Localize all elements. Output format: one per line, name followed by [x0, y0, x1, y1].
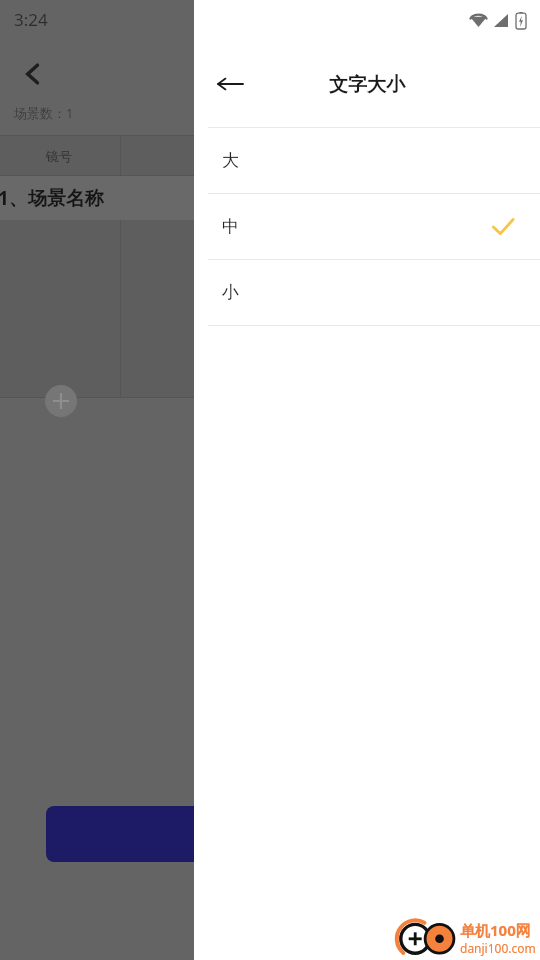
button[interactable]: 中 [194, 194, 540, 259]
staticText: 文字大小 [329, 73, 405, 97]
staticText: 小 [222, 282, 239, 303]
staticText: 1、场景名称 [0, 185, 104, 211]
staticText: danji100.com [460, 940, 536, 956]
button[interactable] [46, 806, 226, 862]
staticText: 场景数：1 [14, 104, 74, 122]
staticText: 大 [222, 150, 239, 171]
staticText: 中 [222, 216, 239, 237]
staticText: 镜号 [46, 148, 72, 164]
staticText: 3:24 [14, 8, 48, 31]
button[interactable]: 小 [194, 260, 540, 325]
button[interactable]: Back [12, 53, 54, 95]
button[interactable]: 大 [194, 128, 540, 193]
button[interactable]: Add [45, 385, 77, 417]
staticText: 单机100网 [460, 920, 531, 940]
button[interactable]: Back [206, 60, 254, 108]
